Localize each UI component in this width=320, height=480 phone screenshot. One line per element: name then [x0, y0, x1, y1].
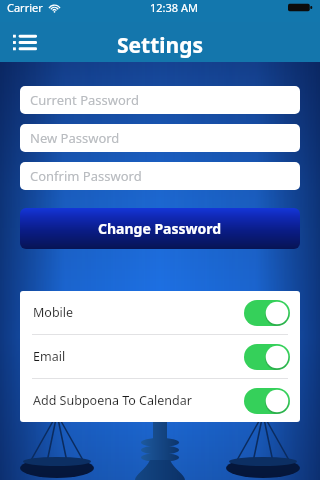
- staticText: Settings: [117, 31, 204, 60]
- button[interactable]: Email: [20, 335, 300, 378]
- staticText: New Password: [30, 129, 120, 147]
- staticText: Mobile: [33, 304, 74, 321]
- button[interactable]: Menu: [9, 26, 41, 58]
- staticText: 12:38 AM: [150, 0, 198, 15]
- button[interactable]: Mobile toggle, on: [244, 300, 290, 326]
- staticText: Current Password: [30, 91, 139, 109]
- staticText: Change Password: [98, 219, 222, 238]
- button[interactable]: Add Subpoena To Calendar toggle, on: [244, 388, 290, 414]
- staticText: Email: [33, 348, 66, 365]
- button[interactable]: Mobile: [20, 291, 300, 334]
- button[interactable]: Confrim Password: [20, 162, 300, 190]
- button[interactable]: Add Subpoena To Calendar: [20, 379, 300, 422]
- staticText: Carrier: [7, 0, 43, 15]
- button[interactable]: Current Password: [20, 86, 300, 114]
- button[interactable]: Change Password: [20, 208, 300, 249]
- button[interactable]: Email toggle, on: [244, 344, 290, 370]
- button[interactable]: New Password: [20, 124, 300, 152]
- staticText: Confrim Password: [30, 167, 142, 185]
- staticText: Add Subpoena To Calendar: [33, 392, 192, 409]
